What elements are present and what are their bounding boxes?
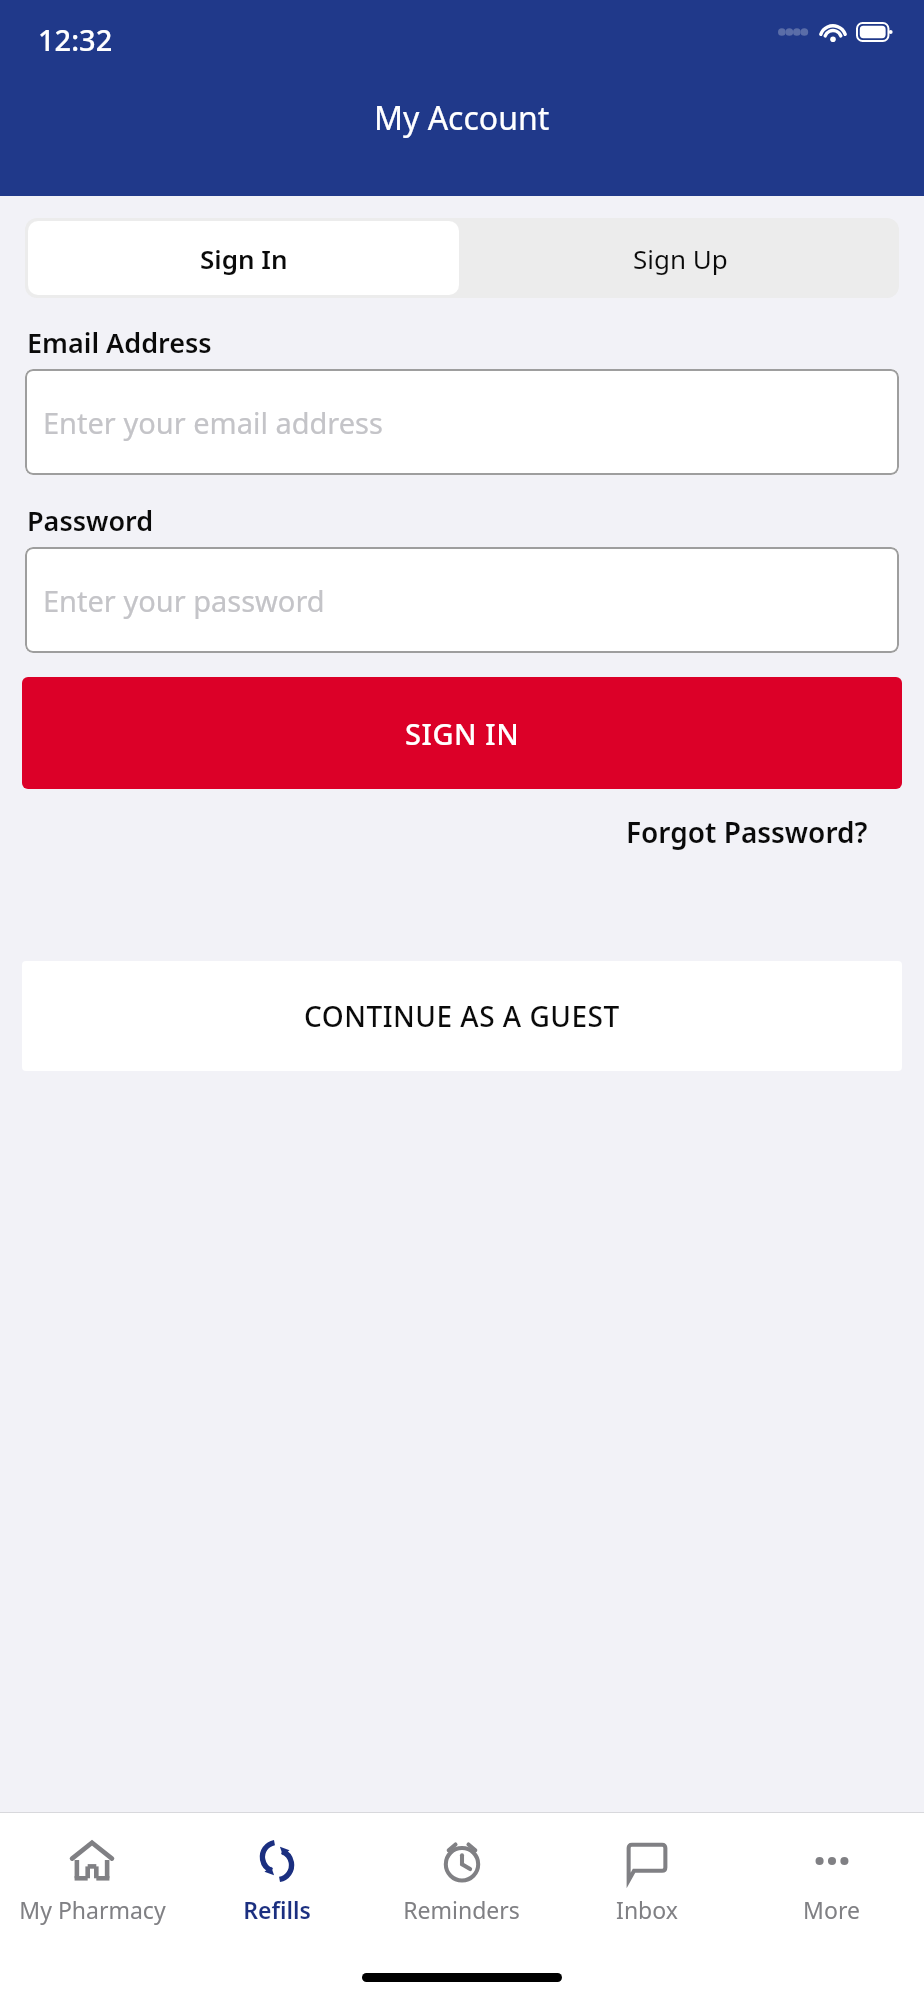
button[interactable]: Refills (184, 1834, 369, 1925)
staticText: Enter your email address (43, 403, 383, 442)
staticText: Email Address (27, 324, 212, 361)
staticText: Enter your password (43, 581, 325, 620)
button[interactable]: Forgot Password? (626, 813, 868, 851)
button[interactable]: Sign In (28, 221, 459, 295)
button[interactable]: Enter your password (25, 547, 899, 653)
staticText: Sign In (200, 241, 288, 276)
staticText: Password (27, 502, 154, 539)
button[interactable]: More (739, 1834, 924, 1925)
staticText: SIGN IN (405, 714, 520, 753)
button[interactable]: SIGN IN (22, 677, 902, 789)
staticText: 12:32 (38, 20, 113, 59)
button[interactable]: My Pharmacy (0, 1834, 184, 1925)
staticText: My Account (374, 96, 550, 140)
staticText: My Pharmacy (19, 1894, 166, 1925)
button[interactable]: Enter your email address (25, 369, 899, 475)
button[interactable]: Reminders (369, 1834, 554, 1925)
button[interactable]: Inbox (554, 1834, 739, 1925)
staticText: Reminders (403, 1894, 520, 1925)
staticText: Inbox (616, 1894, 678, 1925)
staticText: CONTINUE AS A GUEST (304, 997, 620, 1035)
staticText: Forgot Password? (626, 813, 868, 851)
staticText: Sign Up (633, 241, 728, 276)
button[interactable]: Sign Up (462, 218, 899, 298)
button[interactable]: CONTINUE AS A GUEST (22, 961, 902, 1071)
staticText: Refills (243, 1894, 311, 1925)
staticText: More (803, 1894, 860, 1925)
